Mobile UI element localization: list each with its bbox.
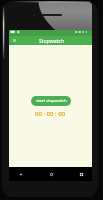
button[interactable]: Back xyxy=(17,171,23,177)
staticText: 00 : 00 : 00 xyxy=(35,110,66,118)
button[interactable]: Recent apps xyxy=(78,171,84,177)
button[interactable]: Home xyxy=(48,171,54,177)
button[interactable]: start stopwatch xyxy=(31,96,71,106)
staticText: Stopwatch xyxy=(39,38,65,45)
staticText: start stopwatch xyxy=(36,98,67,104)
